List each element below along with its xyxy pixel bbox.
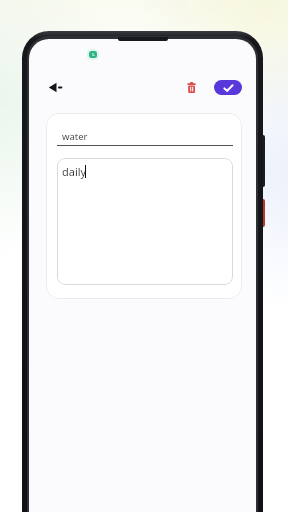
button[interactable] [185,80,198,95]
staticText: daily [62,164,87,179]
button[interactable] [57,158,233,285]
button[interactable] [46,80,64,95]
button[interactable] [214,80,242,95]
staticText: water [62,130,88,143]
